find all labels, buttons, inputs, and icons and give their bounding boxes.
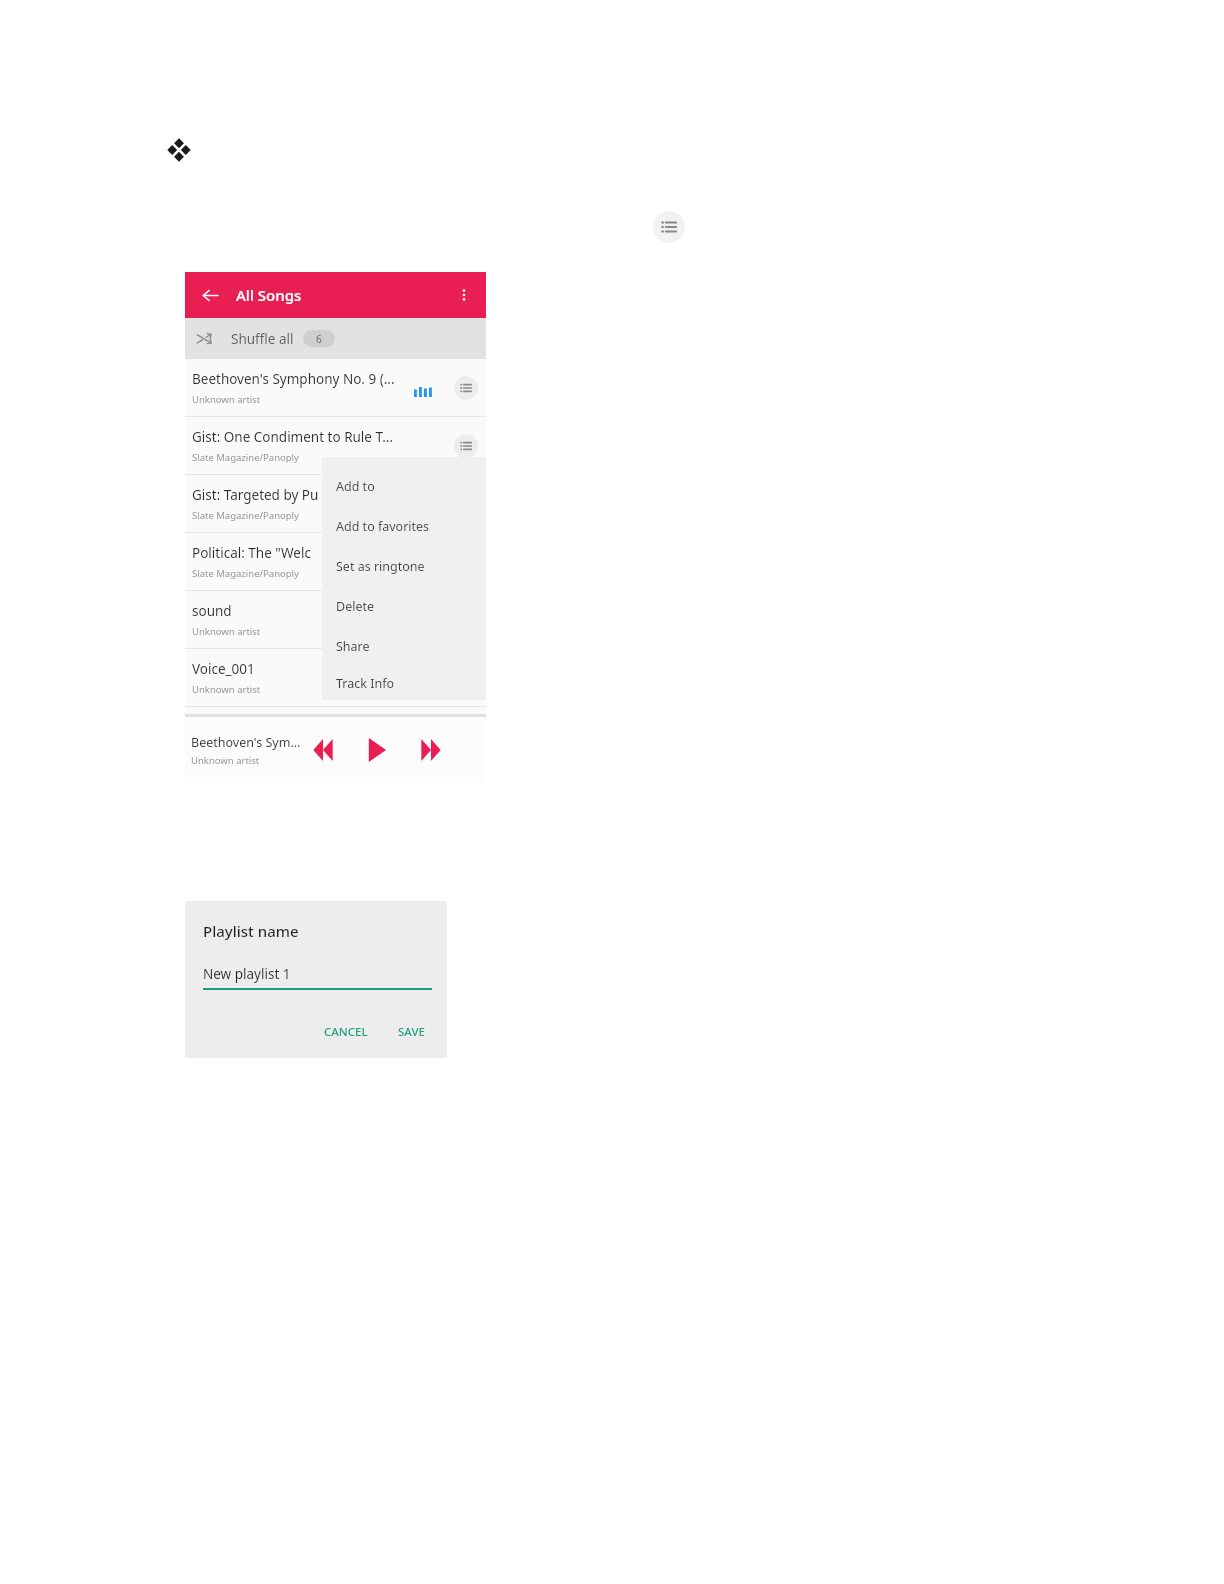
- staticText: Set as ringtone: [336, 558, 425, 575]
- staticText: Political: The "Welc: [192, 544, 311, 562]
- button[interactable]: Add to: [322, 466, 486, 506]
- staticText: sound: [192, 602, 232, 620]
- button[interactable]: Back: [195, 280, 225, 310]
- staticText: Voice_001: [192, 660, 255, 678]
- staticText: Slate Magazine/Panoply: [192, 567, 299, 580]
- button[interactable]: sound: [185, 591, 486, 649]
- staticText: Unknown artist: [191, 754, 260, 767]
- staticText: Slate Magazine/Panoply: [192, 509, 299, 522]
- button[interactable]: Queue: [653, 211, 685, 243]
- button[interactable]: Add to favorites: [322, 506, 486, 546]
- staticText: Shuffle all: [231, 330, 294, 348]
- staticText: Beethoven's Symphony No. 9 (...: [192, 370, 395, 388]
- staticText: All Songs: [236, 285, 302, 305]
- button[interactable]: Previous: [303, 730, 343, 770]
- button[interactable]: Beethoven's Symphony No. 9 (...: [185, 359, 486, 417]
- staticText: Unknown artist: [192, 393, 261, 406]
- button[interactable]: Track options: [454, 434, 478, 458]
- staticText: Unknown artist: [192, 625, 261, 638]
- staticText: Beethoven's Symp...: [191, 734, 303, 751]
- staticText: Share: [336, 638, 370, 655]
- staticText: Add to: [336, 478, 375, 495]
- button[interactable]: CANCEL: [316, 1018, 376, 1046]
- button[interactable]: Political: The "Welc: [185, 533, 486, 591]
- button[interactable]: Set as ringtone: [322, 546, 486, 586]
- button[interactable]: Delete: [322, 586, 486, 626]
- staticText: Add to favorites: [336, 518, 430, 535]
- button[interactable]: Play: [355, 729, 397, 771]
- button[interactable]: Track options: [454, 376, 478, 400]
- button[interactable]: Beethoven's Symp...: [191, 734, 303, 767]
- staticText: CANCEL: [324, 1024, 368, 1040]
- staticText: 6: [316, 332, 322, 346]
- staticText: Gist: Targeted by Pu: [192, 486, 319, 504]
- button[interactable]: New playlist 1: [203, 965, 432, 990]
- staticText: Playlist name: [203, 921, 299, 941]
- staticText: Delete: [336, 598, 375, 615]
- button[interactable]: Share: [322, 626, 486, 666]
- button[interactable]: More options: [450, 281, 478, 309]
- button[interactable]: Track Info: [322, 666, 486, 700]
- other: Logo: [166, 137, 192, 163]
- button[interactable]: Voice_001: [185, 649, 486, 707]
- button[interactable]: Gist: Targeted by Pu: [185, 475, 486, 533]
- button[interactable]: Shuffle all: [185, 318, 486, 359]
- staticText: Unknown artist: [192, 683, 261, 696]
- button[interactable]: Gist: One Condiment to Rule T...: [185, 417, 486, 475]
- staticText: New playlist 1: [203, 965, 291, 983]
- staticText: Gist: One Condiment to Rule T...: [192, 428, 394, 446]
- button[interactable]: Next: [411, 730, 451, 770]
- staticText: Track Info: [336, 675, 395, 692]
- staticText: Slate Magazine/Panoply: [192, 451, 299, 464]
- staticText: SAVE: [398, 1024, 425, 1040]
- button[interactable]: SAVE: [390, 1018, 433, 1046]
